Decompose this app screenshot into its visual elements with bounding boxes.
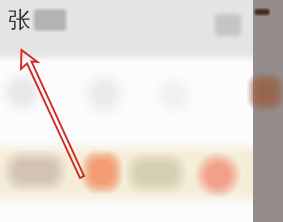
button[interactable]: Recent item one: [3, 150, 67, 192]
button[interactable]: Shortcut three: [150, 71, 198, 119]
button[interactable]: 张: [8, 3, 80, 37]
button[interactable]: Recent item three: [125, 152, 187, 194]
button[interactable]: Recent item four: [195, 152, 241, 198]
button[interactable]: Shortcut one: [0, 67, 47, 117]
button[interactable]: Shortcut two: [79, 69, 129, 119]
staticText: 张: [8, 6, 31, 34]
button[interactable]: Recent item two: [81, 150, 123, 194]
